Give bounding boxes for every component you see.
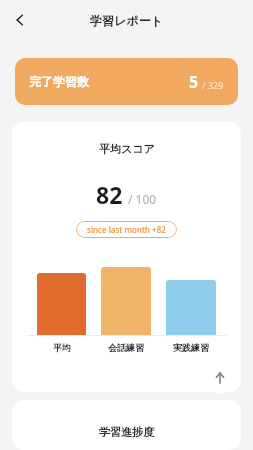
button[interactable] <box>166 280 216 335</box>
button[interactable] <box>101 267 151 335</box>
staticText: 会話練習 <box>108 342 144 353</box>
staticText: 平均スコア <box>99 142 155 156</box>
staticText: 学習進捗度 <box>99 425 154 439</box>
button[interactable]: 完了学習数 <box>15 58 238 105</box>
staticText: 5 <box>189 71 199 93</box>
staticText: / 329 <box>202 79 224 91</box>
button[interactable]: Scroll to top <box>204 362 236 394</box>
staticText: since last month +82 <box>87 224 166 235</box>
staticText: 82 <box>96 179 123 210</box>
staticText: 学習レポート <box>90 13 163 28</box>
button[interactable] <box>37 273 86 335</box>
staticText: 平均 <box>53 342 71 353</box>
button[interactable]: Back <box>6 6 34 34</box>
staticText: 完了学習数 <box>29 74 89 89</box>
button[interactable]: since last month +82 <box>76 221 177 238</box>
staticText: / 100 <box>128 191 157 207</box>
staticText: 実践練習 <box>173 342 209 353</box>
